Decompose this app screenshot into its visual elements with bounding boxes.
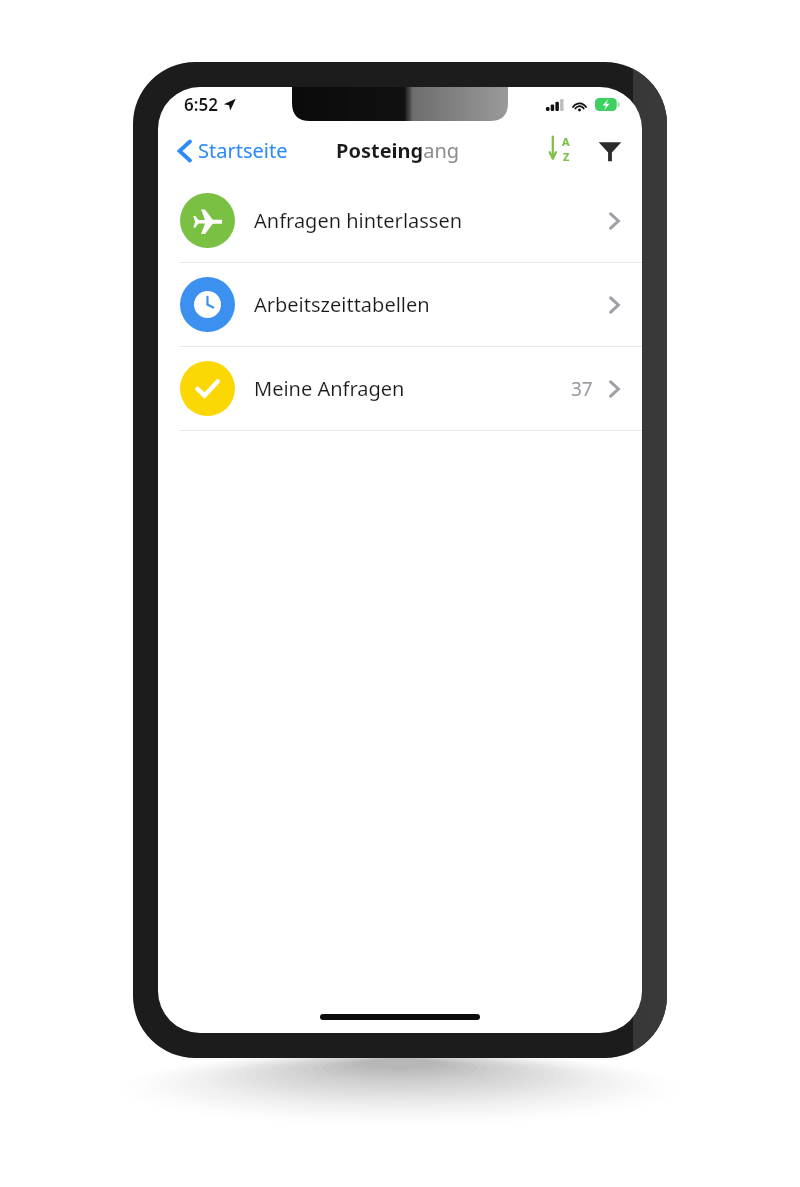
staticText: Arbeitszeittabellen bbox=[254, 291, 430, 318]
button[interactable]: Meine Anfragen bbox=[158, 347, 642, 430]
staticText: Z bbox=[563, 149, 570, 164]
button[interactable]: Anfragen hinterlassen bbox=[158, 179, 642, 262]
staticText: A bbox=[562, 134, 570, 149]
staticText: Anfragen hinterlassen bbox=[254, 207, 463, 234]
button[interactable]: Arbeitszeittabellen bbox=[158, 263, 642, 346]
staticText: Meine Anfragen bbox=[254, 375, 405, 402]
button[interactable]: Filter bbox=[592, 132, 628, 168]
button[interactable]: Startseite bbox=[158, 129, 296, 172]
staticText: 37 bbox=[571, 376, 593, 402]
button[interactable]: Sortieren bbox=[542, 129, 578, 171]
staticText: Posteingang bbox=[336, 137, 460, 164]
staticText: Startseite bbox=[198, 137, 288, 164]
staticText: 6:52 bbox=[184, 93, 218, 116]
